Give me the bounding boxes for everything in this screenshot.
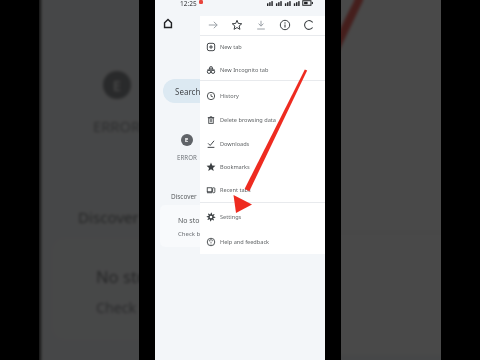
staticText: Search [175, 86, 201, 97]
staticText: New tab [220, 43, 242, 51]
button[interactable]: History [148, 0, 441, 7]
button[interactable]: Help and feedback [200, 231, 325, 253]
button[interactable]: New Incognito tab [200, 59, 325, 81]
staticText: New Incognito tab [220, 66, 269, 74]
staticText: 12:25 [180, 0, 197, 8]
button[interactable]: Settings [148, 241, 441, 293]
staticText: Settings [220, 213, 242, 221]
button[interactable]: Downloads [200, 133, 325, 155]
staticText: ERROR [93, 116, 141, 136]
staticText: Check back [178, 230, 210, 238]
button[interactable]: Reload [300, 16, 318, 34]
staticText: Recent tabs [196, 194, 269, 212]
staticText: Discover [78, 207, 139, 228]
staticText: History [220, 92, 239, 100]
staticText: Discover [171, 192, 197, 201]
staticText: E [113, 76, 121, 95]
staticText: Delete browsing data [196, 28, 329, 46]
staticText: Bookmarks [196, 140, 267, 158]
button[interactable]: Home [158, 14, 177, 33]
button[interactable]: Delete browsing data [200, 109, 325, 131]
staticText: E [185, 136, 189, 144]
button[interactable]: Settings [200, 206, 325, 228]
button[interactable]: Bookmarks [200, 156, 325, 178]
staticText: Recent tabs [220, 186, 251, 194]
button[interactable]: Forward [204, 16, 222, 34]
staticText: No stories [96, 265, 176, 288]
staticText: Help and feedback [220, 238, 270, 246]
button[interactable]: Recent tabs [200, 179, 325, 201]
button[interactable]: New tab [200, 36, 325, 58]
button[interactable]: History [200, 85, 325, 107]
staticText: ERROR [177, 153, 197, 161]
staticText: No stories [178, 216, 212, 226]
button[interactable]: Download page [252, 16, 270, 34]
button[interactable]: Bookmarks [148, 123, 441, 175]
staticText: Downloads [220, 140, 250, 148]
button[interactable]: Search [163, 79, 273, 103]
staticText: Bookmarks [220, 163, 250, 171]
button[interactable]: Help and feedback [148, 301, 441, 353]
staticText: Downloads [196, 85, 266, 103]
button[interactable]: Delete browsing data [148, 11, 441, 63]
button[interactable]: Recent tabs [148, 177, 441, 229]
staticText: Check back [96, 298, 172, 317]
button[interactable]: Page info [276, 16, 294, 34]
button[interactable]: Downloads [148, 68, 441, 120]
staticText: Delete browsing data [220, 116, 276, 124]
button[interactable]: Bookmark [228, 16, 246, 34]
